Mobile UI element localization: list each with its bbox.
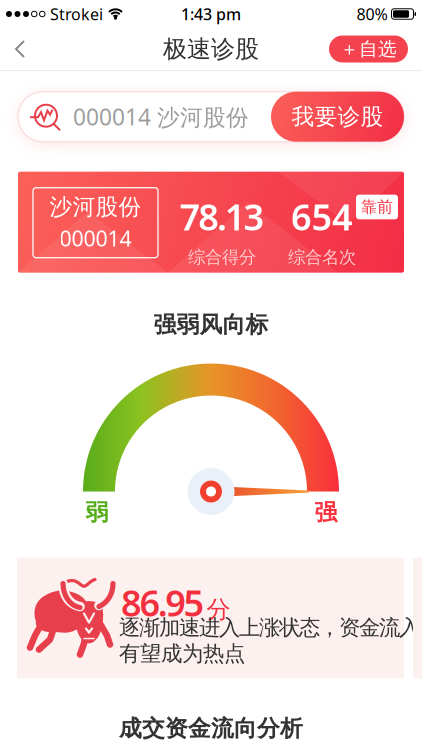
staticText: 强弱风向标 bbox=[153, 311, 268, 338]
staticText: 逐渐加速进入上涨状态，资金流入 bbox=[119, 614, 420, 641]
staticText: 沙河股份 bbox=[49, 193, 141, 221]
staticText: 78.13 bbox=[179, 193, 265, 240]
staticText: 弱 bbox=[85, 499, 108, 526]
staticText: 有望成为热点 bbox=[119, 640, 245, 667]
staticText: 我要诊股 bbox=[291, 103, 383, 131]
staticText: 1:43 pm bbox=[181, 3, 241, 25]
staticText: 综合名次 bbox=[288, 246, 356, 268]
staticText: 极速诊股 bbox=[163, 34, 259, 64]
button[interactable]: Back bbox=[0, 31, 28, 67]
staticText: Strokei bbox=[50, 3, 103, 25]
staticText: ＋自选 bbox=[340, 37, 397, 60]
button[interactable]: Search stock bbox=[18, 102, 271, 132]
staticText: 000014 沙河股份 bbox=[73, 102, 249, 132]
staticText: 强 bbox=[314, 499, 337, 526]
staticText: 成交资金流向分析 bbox=[119, 714, 303, 742]
staticText: 80% bbox=[356, 3, 387, 25]
staticText: 分 bbox=[207, 595, 231, 624]
button[interactable]: 我要诊股 bbox=[271, 92, 404, 142]
staticText: 综合得分 bbox=[188, 246, 256, 268]
button[interactable]: ＋自选 bbox=[329, 35, 408, 62]
staticText: 000014 bbox=[59, 224, 131, 252]
staticText: 靠前 bbox=[361, 197, 393, 217]
staticText: 654 bbox=[291, 193, 353, 240]
staticText: 86.95 bbox=[121, 578, 205, 626]
